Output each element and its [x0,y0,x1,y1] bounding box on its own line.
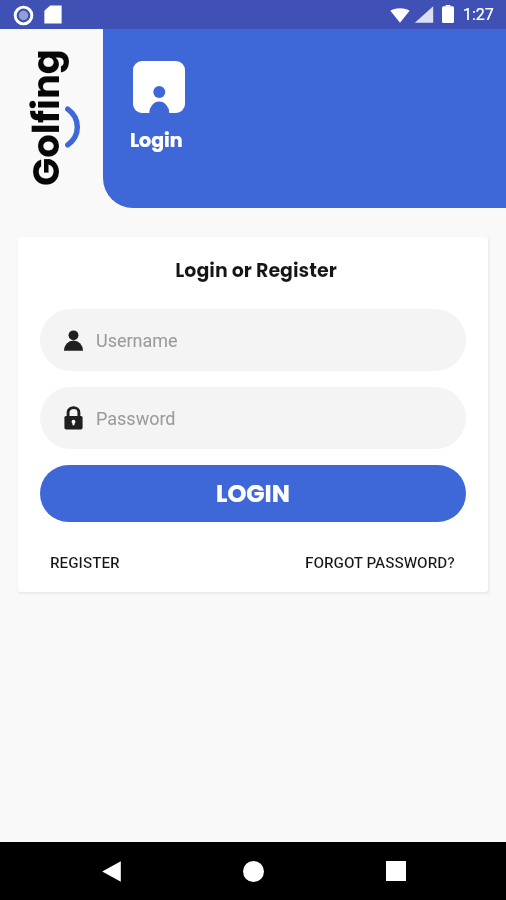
staticText: Golfing [20,49,72,186]
button[interactable]: LOGIN [40,465,466,522]
button[interactable]: Username [40,309,466,371]
button[interactable]: Back [82,842,140,900]
button[interactable]: FORGOT PASSWORD? [305,552,455,574]
button[interactable]: Login [126,56,190,156]
button[interactable]: Recent apps [367,842,425,900]
staticText: FORGOT PASSWORD? [305,554,455,572]
staticText: Password [96,408,176,429]
button[interactable]: REGISTER [50,552,120,574]
staticText: Username [96,330,178,351]
staticText: LOGIN [216,477,290,511]
staticText: REGISTER [50,554,120,572]
button[interactable]: Password [40,387,466,449]
staticText: Login [130,127,183,154]
button[interactable]: Home [224,842,282,900]
staticText: Login or Register [21,257,488,284]
staticText: 1:27 [463,5,494,24]
